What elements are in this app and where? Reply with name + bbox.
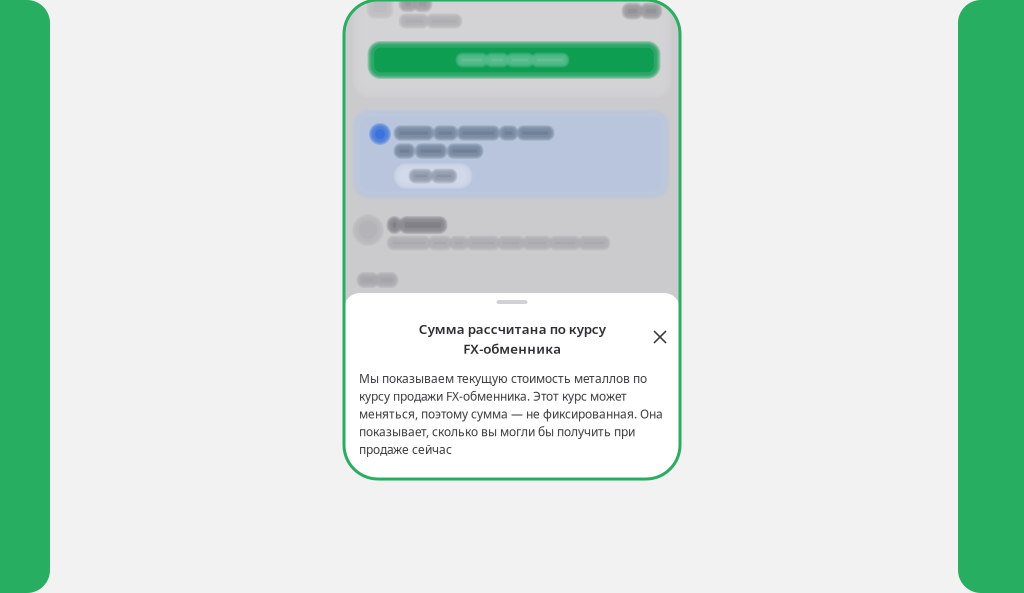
staticText: Сумма рассчитана по курсу FX-обменника	[418, 320, 605, 357]
staticText: Мы показываем текущую стоимость металлов…	[359, 370, 663, 457]
button[interactable]: Закрыть	[645, 322, 675, 352]
